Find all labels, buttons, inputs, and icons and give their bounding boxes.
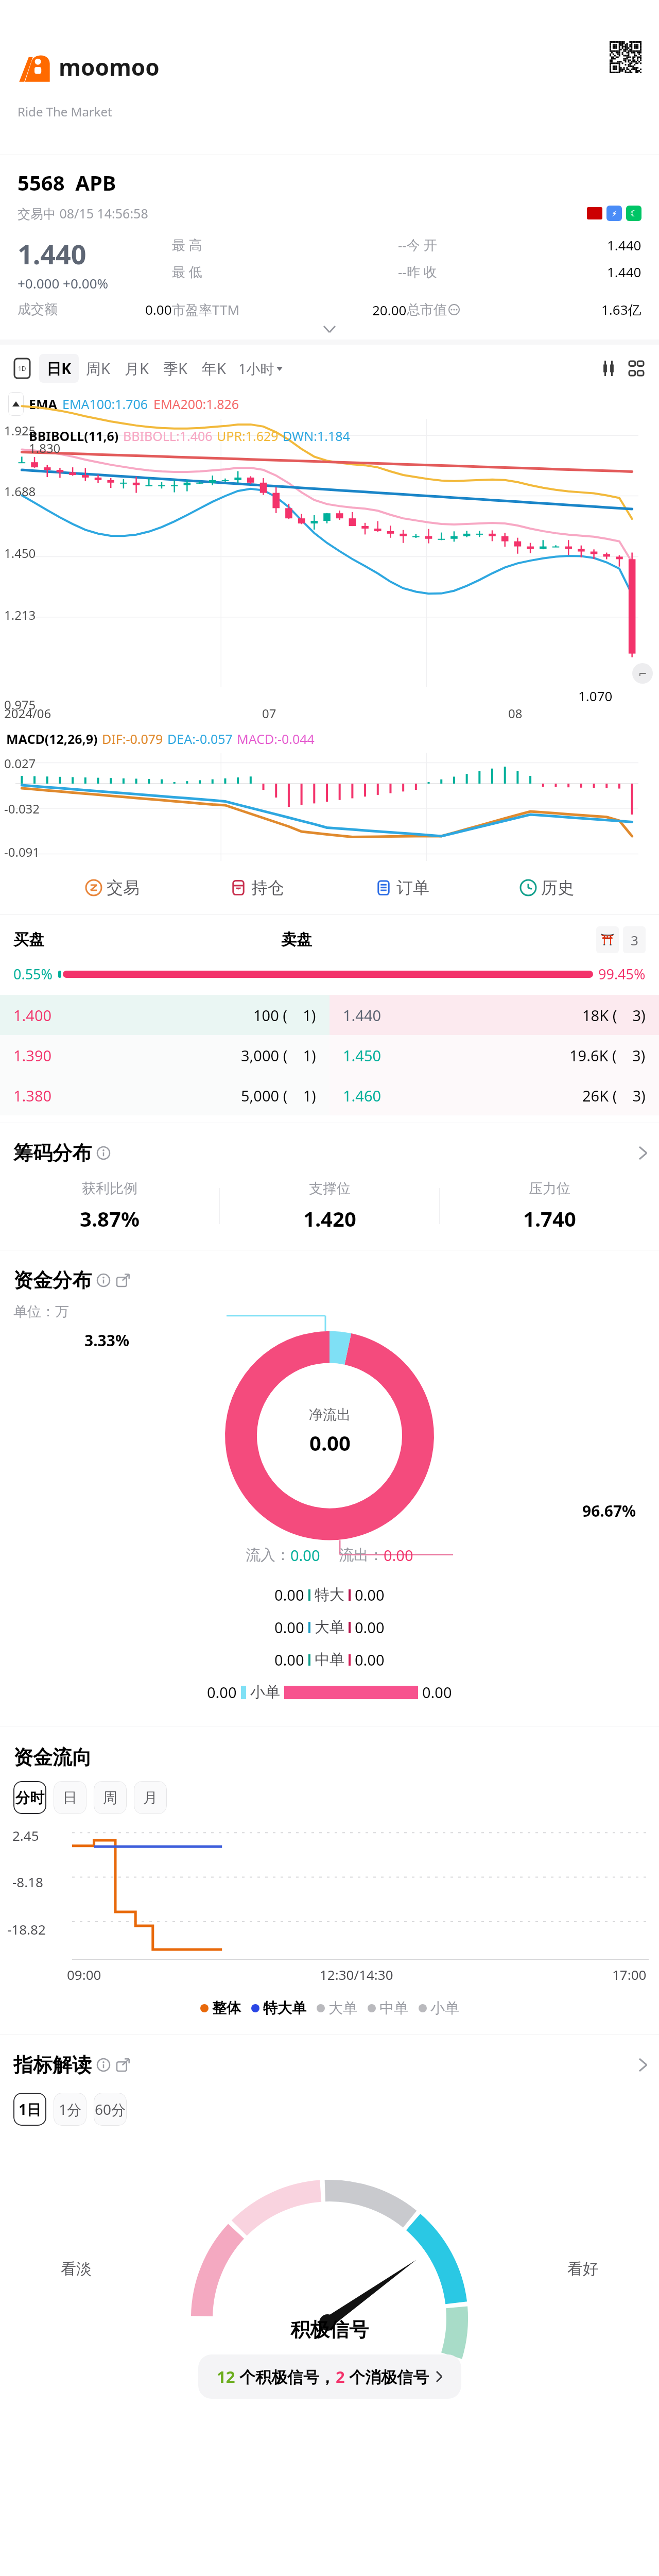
staticText: 日K: [46, 358, 72, 379]
button[interactable]: 分时: [13, 1781, 46, 1814]
button[interactable]: 经纪商队列: [596, 926, 619, 953]
staticText: 最 低: [172, 262, 202, 281]
staticText: 100 ( 1): [253, 1005, 316, 1025]
staticText: 1.440: [18, 235, 86, 272]
button[interactable]: K线类型: [598, 358, 619, 379]
button[interactable]: 历史: [514, 874, 579, 901]
button[interactable]: 年K: [195, 354, 233, 383]
staticText: 支撑位: [309, 1180, 351, 1197]
staticText: 3.87%: [80, 1205, 140, 1232]
staticText: 1.420: [303, 1205, 356, 1232]
staticText: 周K: [86, 358, 110, 379]
staticText: ☾: [630, 209, 638, 218]
button[interactable]: 筹码分布: [0, 1123, 659, 1171]
staticText: 持仓: [251, 877, 284, 898]
staticText: 26K ( 3): [582, 1086, 646, 1106]
button[interactable]: 1D: [12, 357, 32, 380]
staticText: 0.00: [355, 1617, 385, 1637]
staticText: 07: [262, 705, 276, 722]
staticText: 20.00: [372, 301, 407, 319]
button[interactable]: 60分: [94, 2093, 127, 2126]
staticText: 1.450: [4, 545, 36, 562]
button[interactable]: 周: [94, 1781, 127, 1814]
staticText: 中单: [379, 1999, 408, 2017]
staticText: 3,000 ( 1): [241, 1045, 316, 1065]
staticText: 5,000 ( 1): [241, 1086, 316, 1106]
button[interactable]: 指标解读: [0, 2035, 659, 2082]
staticText: 1.070: [578, 687, 613, 705]
staticText: 0.00: [384, 1545, 413, 1565]
staticText: 资金分布: [13, 1268, 92, 1293]
staticText: 看好: [567, 2259, 598, 2279]
staticText: 08: [508, 705, 523, 722]
staticText: 1日: [19, 2099, 42, 2119]
button[interactable]: 更多指标: [626, 358, 647, 379]
staticText: 2024/06: [4, 705, 51, 722]
button[interactable]: 展开指标: [8, 392, 24, 416]
button[interactable]: 月K: [117, 354, 156, 383]
staticText: 1.830: [29, 439, 61, 456]
staticText: MACD:-0.044: [237, 730, 315, 748]
staticText: 获利比例: [82, 1180, 137, 1197]
button[interactable]: 持仓: [224, 874, 289, 901]
staticText: 0.00: [207, 1682, 237, 1702]
staticText: 1.440: [607, 263, 641, 281]
staticText: MACD(12,26,9): [6, 730, 98, 748]
staticText: --: [398, 263, 407, 281]
button[interactable]: 周K: [79, 354, 117, 383]
staticText: 中单: [315, 1650, 344, 1669]
staticText: ⌐: [638, 668, 647, 680]
button[interactable]: 1.390: [0, 1035, 659, 1075]
staticText: DWN:1.184: [283, 427, 350, 445]
staticText: 1.63亿: [601, 300, 641, 319]
staticText: 成交额: [18, 301, 58, 318]
staticText: 流出：: [339, 1546, 384, 1565]
staticText: moomoo: [59, 52, 160, 82]
staticText: 60分: [95, 2099, 126, 2119]
staticText: 0.00: [274, 1617, 304, 1637]
button[interactable]: 1.380: [0, 1075, 659, 1115]
staticText: 特大单: [263, 1999, 306, 2017]
button[interactable]: 1小时: [233, 355, 288, 382]
staticText: 09:00: [67, 1965, 101, 1984]
staticText: 看淡: [61, 2259, 92, 2279]
staticText: 12: [217, 2366, 235, 2387]
staticText: 2.45: [12, 1826, 39, 1844]
staticText: 年K: [202, 358, 226, 379]
staticText: EMA: [29, 395, 57, 413]
staticText: -0.032: [4, 800, 40, 817]
button[interactable]: 档位: [623, 926, 646, 953]
staticText: BBIBOLL(11,6): [29, 427, 119, 445]
staticText: 今 开: [407, 235, 437, 254]
staticText: -0.091: [4, 843, 40, 860]
staticText: 3: [631, 931, 638, 949]
button[interactable]: 交易: [80, 874, 145, 901]
staticText: 3.33%: [84, 1330, 129, 1351]
staticText: 昨 收: [407, 262, 437, 281]
button[interactable]: 日K: [39, 354, 79, 383]
button[interactable]: 资金分布: [0, 1250, 659, 1298]
staticText: 订单: [396, 877, 429, 898]
staticText: 单位：万: [13, 1303, 69, 1320]
staticText: 1小时: [238, 359, 274, 378]
button[interactable]: 订单: [370, 874, 435, 901]
staticText: 0.00: [355, 1650, 385, 1670]
staticText: 5568 APB: [18, 168, 116, 196]
staticText: 1.380: [13, 1086, 52, 1106]
staticText: 0.00: [145, 300, 172, 318]
staticText: 交易中 08/15 14:56:58: [18, 205, 148, 222]
staticText: 季K: [163, 358, 187, 379]
staticText: 0.00: [274, 1650, 304, 1670]
staticText: 12:30/14:30: [320, 1965, 393, 1984]
button[interactable]: 1日: [13, 2093, 46, 2126]
staticText: -18.82: [7, 1920, 46, 1938]
button[interactable]: 12: [198, 2354, 461, 2399]
button[interactable]: 月: [134, 1781, 167, 1814]
staticText: 1.440: [607, 236, 641, 254]
staticText: 周: [103, 1789, 117, 1807]
button[interactable]: 1.400: [0, 995, 659, 1035]
staticText: 净流出: [309, 1406, 351, 1423]
button[interactable]: 日: [54, 1781, 86, 1814]
button[interactable]: 1分: [54, 2093, 86, 2126]
button[interactable]: 季K: [156, 354, 195, 383]
